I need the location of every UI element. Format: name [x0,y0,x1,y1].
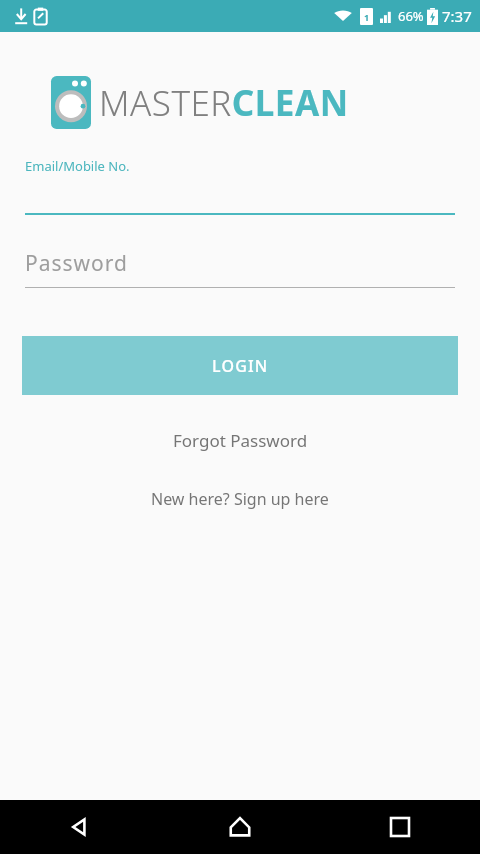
staticText: 1 [364,11,370,23]
button[interactable]: Forgot Password [0,423,480,458]
staticText: Password [25,249,128,278]
button[interactable]: Recent apps [320,800,480,854]
staticText: 66% [398,7,424,25]
staticText: MASTERCLEAN [99,79,349,127]
staticText: Email/Mobile No. [25,157,130,175]
button[interactable]: Back [0,800,160,854]
staticText: 7:37 [442,6,472,26]
button[interactable]: LOGIN [22,336,458,395]
button[interactable]: Home [160,800,320,854]
staticText: LOGIN [212,355,269,377]
staticText: Forgot Password [173,429,308,452]
staticText: New here? Sign up here [151,488,329,510]
button[interactable]: New here? Sign up here [0,482,480,516]
